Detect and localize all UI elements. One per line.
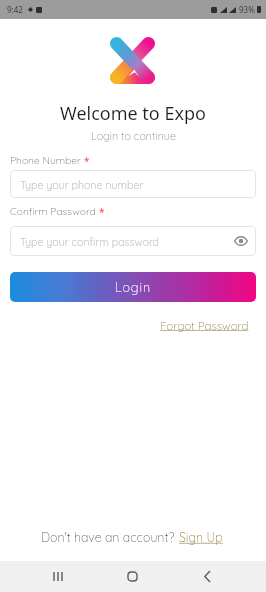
button[interactable]: Back — [185, 561, 229, 592]
staticText: Type your phone number — [20, 178, 144, 191]
staticText: 9:42 — [7, 4, 23, 15]
staticText: Type your confirm password — [20, 235, 160, 248]
staticText: * — [99, 205, 105, 219]
button[interactable]: Home — [110, 561, 155, 592]
staticText: * — [84, 154, 90, 168]
staticText: Confirm Password — [10, 205, 96, 218]
button[interactable]: Login — [10, 272, 256, 302]
button[interactable]: Recent apps — [36, 561, 80, 592]
button[interactable]: Type your phone number — [10, 170, 256, 198]
staticText: 93% — [239, 4, 255, 15]
staticText: Phone Number — [10, 154, 81, 167]
button[interactable]: Sign Up — [179, 530, 223, 545]
button[interactable]: Type your confirm password — [10, 226, 256, 256]
staticText: Login — [115, 279, 151, 295]
staticText: Don't have an account? — [41, 530, 175, 545]
staticText: Welcome to Expo — [60, 101, 206, 126]
staticText: Login to continue — [91, 129, 176, 143]
button[interactable]: Forgot Password — [160, 318, 249, 332]
button[interactable]: Show password — [234, 234, 248, 248]
